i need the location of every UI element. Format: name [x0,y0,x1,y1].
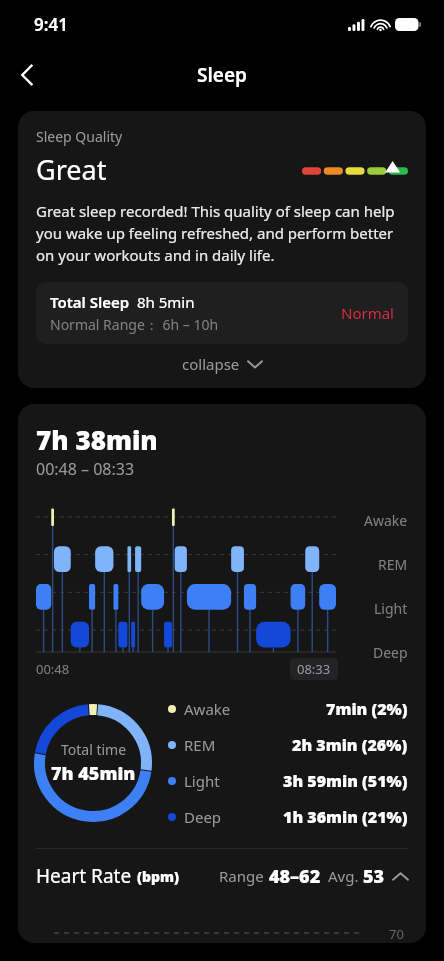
staticText: Great sleep recorded! This quality of sl… [36,201,408,266]
staticText: Deep [184,807,222,827]
staticText: Light [374,599,408,618]
staticText: Awake [364,511,408,530]
button[interactable]: Heart Rate [18,849,426,903]
staticText: 7h 45min [51,761,136,786]
staticText: Sleep Quality [36,127,123,146]
staticText: REM [184,735,216,755]
staticText: Normal [341,303,394,323]
staticText: 7h 38min [36,422,158,457]
staticText: 9:41 [34,13,68,36]
staticText: REM [378,555,408,574]
staticText: Total Sleep [50,292,130,312]
staticText: Light [184,771,220,791]
staticText: Normal Range： 6h – 10h [50,315,219,334]
staticText: 3h 59min (51%) [283,770,408,792]
staticText: 48–62 [269,864,321,889]
staticText: Sleep [197,62,247,88]
staticText: Avg. [328,866,359,886]
staticText: Total time [61,740,127,759]
staticText: 53 [363,864,385,889]
staticText: 00:48 [36,660,70,678]
staticText: 08:33 [297,660,331,678]
button[interactable]: collapse [36,344,408,384]
staticText: 2h 3min (26%) [292,734,408,756]
staticText: Range [219,866,264,886]
staticText: 70 [389,925,404,943]
staticText: Heart Rate [36,863,132,889]
staticText: 8h 5min [137,292,195,312]
staticText: 1h 36min (21%) [283,806,408,828]
staticText: 7min (2%) [326,698,408,720]
staticText: Awake [184,699,231,719]
staticText: Deep [373,643,408,662]
staticText: Great [36,151,107,188]
staticText: 00:48 – 08:33 [36,458,135,480]
staticText: (bpm) [137,867,180,886]
staticText: collapse [182,354,240,374]
button[interactable]: Back [6,53,50,97]
